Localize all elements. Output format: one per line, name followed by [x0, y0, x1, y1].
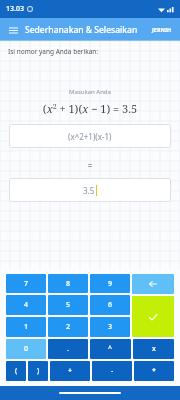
staticText: 9 — [108, 279, 113, 289]
staticText: ) — [37, 366, 40, 376]
button[interactable]: (x^2+1)(x-1) — [9, 124, 171, 148]
staticText: ( — [15, 366, 18, 376]
button[interactable]: . — [48, 339, 88, 359]
button[interactable]: 3 — [90, 317, 130, 337]
button[interactable]: 1 — [6, 317, 46, 337]
staticText: (x2 + 1)(x − 1) = 3.5 — [0, 101, 180, 116]
staticText: Masukan Anda — [0, 88, 180, 96]
staticText: * — [152, 366, 156, 376]
button[interactable]: Submit answer — [132, 296, 174, 337]
staticText: Sederhanakan & Selesaikan Pe… — [25, 24, 147, 36]
staticText: 0 — [24, 344, 29, 354]
button[interactable]: ( — [6, 361, 26, 381]
staticText: + — [68, 366, 73, 376]
staticText: . — [67, 344, 69, 354]
staticText: 5 — [66, 300, 71, 310]
staticText: 6 — [108, 300, 113, 310]
button[interactable]: + — [50, 361, 90, 381]
staticText: ^ — [108, 344, 113, 354]
staticText: 3.5 — [83, 185, 95, 196]
button[interactable]: 0 — [6, 339, 46, 359]
staticText: (x^2+1)(x-1) — [68, 131, 112, 142]
button[interactable]: 6 — [90, 295, 130, 315]
staticText: 8 — [66, 279, 71, 289]
staticText: JERNIH — [152, 26, 172, 33]
button[interactable]: ^ — [90, 339, 131, 359]
staticText: 4 — [24, 300, 29, 310]
staticText: = — [0, 159, 180, 171]
button[interactable]: Open navigation menu — [5, 22, 21, 38]
staticText: 3 — [108, 322, 113, 332]
button[interactable]: 9 — [90, 274, 130, 293]
button[interactable]: Backspace — [132, 274, 174, 294]
button[interactable]: * — [134, 361, 174, 381]
button[interactable]: - — [92, 361, 132, 381]
button[interactable]: 7 — [6, 274, 46, 293]
staticText: 7 — [24, 279, 29, 289]
staticText: x — [152, 344, 156, 354]
button[interactable]: ) — [28, 361, 48, 381]
button[interactable]: Home gesture bar — [59, 392, 121, 394]
staticText: 13.03 — [6, 4, 24, 14]
button[interactable]: 8 — [48, 274, 88, 293]
button[interactable]: 2 — [48, 317, 88, 337]
button[interactable]: x — [133, 339, 174, 359]
staticText: 1 — [24, 322, 29, 332]
button[interactable]: 4 — [6, 295, 46, 315]
staticText: - — [111, 366, 114, 376]
button[interactable]: 5 — [48, 295, 88, 315]
staticText: Isi nomor yang Anda berikan: — [8, 47, 99, 56]
staticText: 2 — [66, 322, 71, 332]
button[interactable]: 3.5 — [9, 178, 171, 202]
button[interactable]: JERNIH — [149, 22, 175, 37]
